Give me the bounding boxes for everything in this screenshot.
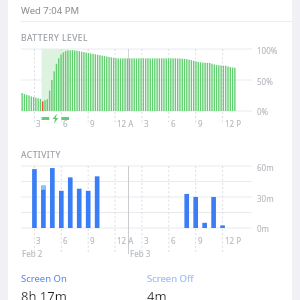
staticText: Feb 2 [22,248,43,259]
button[interactable]: 60m [8,165,292,263]
staticText: 0m [257,223,270,234]
button[interactable]: Screen On [21,272,147,300]
button[interactable]: 100% [8,48,292,136]
staticText: 30m [257,193,274,204]
staticText: 60m [257,162,274,173]
staticText: 9 [90,118,95,129]
staticText: 3 [36,118,41,129]
staticText: 12 P [225,235,242,246]
staticText: 9 [198,118,203,129]
staticText: 50% [257,76,273,87]
staticText: 3 [144,235,149,246]
staticText: BATTERY LEVEL [21,32,88,44]
staticText: Screen Off [147,272,194,285]
staticText: Wed 7:04 PM [21,4,79,17]
button[interactable]: Screen Off [147,272,273,300]
staticText: 6 [63,235,68,246]
button[interactable]: Wed 7:04 PM [8,0,292,21]
staticText: 6 [63,118,68,129]
staticText: 100% [257,45,278,56]
staticText: Feb 3 [130,248,151,259]
staticText: Screen On [21,272,67,285]
staticText: 6 [171,235,176,246]
staticText: 9 [198,235,203,246]
staticText: 0% [257,106,269,117]
staticText: 12 A [117,235,134,246]
staticText: 9 [90,235,95,246]
staticText: 12 P [225,118,242,129]
staticText: 12 A [117,118,134,129]
staticText: 4m [147,287,167,300]
staticText: 8h 17m [21,287,67,300]
staticText: 3 [36,235,41,246]
staticText: 6 [171,118,176,129]
staticText: 3 [144,118,149,129]
staticText: ACTIVITY [21,149,61,161]
